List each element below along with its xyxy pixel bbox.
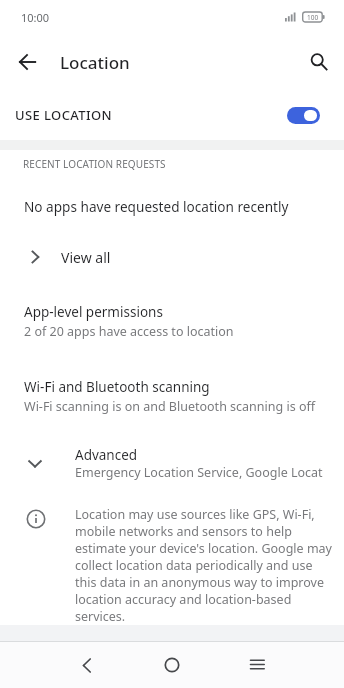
button[interactable] <box>294 37 344 87</box>
staticText: Location <box>60 51 130 74</box>
staticText: Wi-Fi scanning is on and Bluetooth scann… <box>24 398 316 415</box>
staticText: Advanced <box>75 446 138 464</box>
staticText: View all <box>61 248 111 267</box>
button[interactable]: Wi-Fi and Bluetooth scanning <box>0 378 344 415</box>
staticText: 10:00 <box>21 10 50 25</box>
button[interactable]: No apps have requested location recently <box>0 178 344 234</box>
button[interactable] <box>3 38 51 86</box>
button[interactable]: USE LOCATION <box>0 90 344 140</box>
staticText: App-level permissions <box>24 303 163 321</box>
staticText: USE LOCATION <box>15 106 113 124</box>
staticText: Wi-Fi and Bluetooth scanning <box>24 378 210 396</box>
staticText: Location may use sources like GPS, Wi-Fi… <box>75 506 332 625</box>
staticText: 2 of 20 apps have access to location <box>24 323 234 340</box>
button[interactable] <box>287 107 320 124</box>
staticText: Emergency Location Service, Google Locat… <box>75 464 323 481</box>
button[interactable]: Advanced <box>0 446 344 481</box>
button[interactable]: View all <box>0 234 344 280</box>
staticText: 100 <box>307 13 319 22</box>
staticText: RECENT LOCATION REQUESTS <box>23 157 166 171</box>
staticText: No apps have requested location recently <box>24 197 289 216</box>
button[interactable] <box>148 642 196 688</box>
button[interactable] <box>63 642 111 688</box>
button[interactable]: App-level permissions <box>0 280 344 340</box>
button[interactable] <box>233 642 281 688</box>
